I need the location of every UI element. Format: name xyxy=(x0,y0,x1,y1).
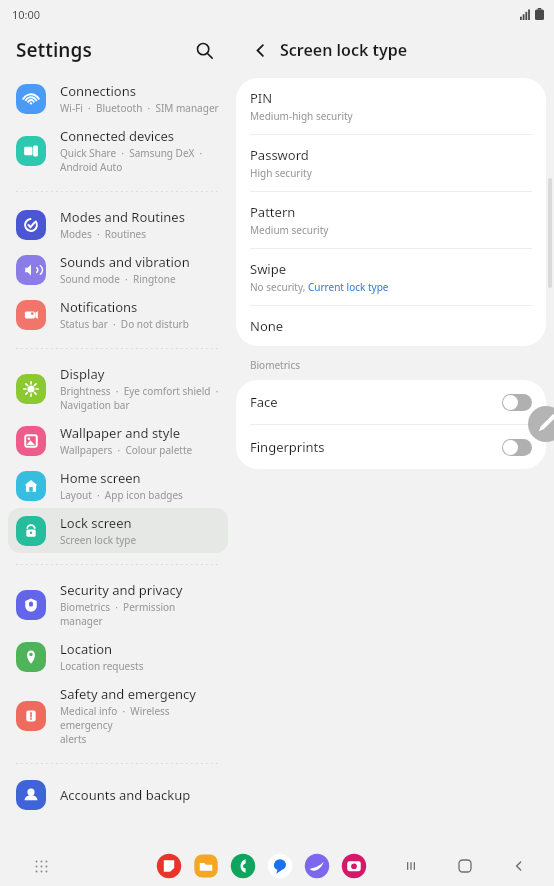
button[interactable]: Safety and emergency xyxy=(8,679,228,752)
button[interactable]: Fingerprints xyxy=(236,425,546,469)
staticText: Swipe xyxy=(250,260,287,278)
staticText: Sounds and vibration xyxy=(60,253,190,271)
button[interactable]: None xyxy=(236,306,546,346)
staticText: Medium-high security xyxy=(250,109,353,123)
button[interactable]: Back xyxy=(244,34,276,66)
staticText: No security, Current lock type xyxy=(250,280,389,294)
staticText: Medium security xyxy=(250,223,329,237)
staticText: Pattern xyxy=(250,203,296,221)
staticText: Screen lock type xyxy=(280,39,408,61)
button[interactable]: Wallpaper and style xyxy=(8,418,228,463)
button[interactable]: Connected devices xyxy=(8,121,228,180)
button[interactable]: Connections xyxy=(8,76,228,121)
button[interactable]: phone xyxy=(230,853,256,879)
button[interactable]: Recents xyxy=(398,853,424,879)
staticText: Location xyxy=(60,640,113,658)
staticText: Settings xyxy=(16,37,92,63)
button[interactable]: Notifications xyxy=(8,292,228,337)
staticText: Security and privacy xyxy=(60,581,183,599)
staticText: Sound mode · Ringtone xyxy=(60,272,176,286)
button[interactable]: Back xyxy=(506,853,532,879)
staticText: Wi-Fi · Bluetooth · SIM manager xyxy=(60,101,219,115)
staticText: Fingerprints xyxy=(250,438,502,456)
staticText: Quick Share · Samsung DeX · Android Auto xyxy=(60,146,203,174)
button[interactable]: files xyxy=(193,853,219,879)
staticText: Location requests xyxy=(60,659,144,673)
staticText: Home screen xyxy=(60,469,141,487)
button[interactable]: camera xyxy=(341,853,367,879)
staticText: 10:00 xyxy=(12,7,41,22)
button[interactable]: Modes and Routines xyxy=(8,202,228,247)
button[interactable]: Security and privacy xyxy=(8,575,228,634)
staticText: Notifications xyxy=(60,298,138,316)
button[interactable]: messages xyxy=(267,853,293,879)
button[interactable]: Search xyxy=(188,34,220,66)
button[interactable]: PIN xyxy=(236,78,546,134)
button[interactable]: Pattern xyxy=(236,192,546,248)
staticText: Modes and Routines xyxy=(60,208,185,226)
staticText: Layout · App icon badges xyxy=(60,488,183,502)
staticText: None xyxy=(250,317,284,335)
staticText: PIN xyxy=(250,89,273,107)
button[interactable]: Apps xyxy=(28,853,54,879)
button[interactable]: Swipe xyxy=(236,249,546,305)
staticText: Connections xyxy=(60,82,136,100)
button[interactable]: Accounts and backup xyxy=(8,774,228,816)
button[interactable]: Sounds and vibration xyxy=(8,247,228,292)
button[interactable]: Face xyxy=(236,380,546,424)
button[interactable]: Home screen xyxy=(8,463,228,508)
staticText: Biometrics xyxy=(250,358,301,372)
staticText: Accounts and backup xyxy=(60,786,191,804)
staticText: Wallpapers · Colour palette xyxy=(60,443,193,457)
staticText: Password xyxy=(250,146,309,164)
staticText: Display xyxy=(60,365,105,383)
button[interactable]: internet xyxy=(304,853,330,879)
staticText: Screen lock type xyxy=(60,533,137,547)
staticText: Brightness · Eye comfort shield · Naviga… xyxy=(60,384,219,412)
staticText: High security xyxy=(250,166,312,180)
staticText: Medical info · Wireless emergency alerts xyxy=(60,704,220,746)
button[interactable]: Lock screen xyxy=(8,508,228,553)
button[interactable]: Display xyxy=(8,359,228,418)
staticText: Connected devices xyxy=(60,127,174,145)
staticText: Status bar · Do not disturb xyxy=(60,317,189,331)
button[interactable]: Home xyxy=(452,853,478,879)
button[interactable]: Password xyxy=(236,135,546,191)
staticText: Modes · Routines xyxy=(60,227,147,241)
staticText: Safety and emergency xyxy=(60,685,196,703)
staticText: Wallpaper and style xyxy=(60,424,181,442)
staticText: Face xyxy=(250,393,502,411)
staticText: Biometrics · Permission manager xyxy=(60,600,220,628)
staticText: Lock screen xyxy=(60,514,132,532)
button[interactable]: notes xyxy=(156,853,182,879)
button[interactable]: Location xyxy=(8,634,228,679)
button[interactable]: Edit xyxy=(528,406,554,442)
